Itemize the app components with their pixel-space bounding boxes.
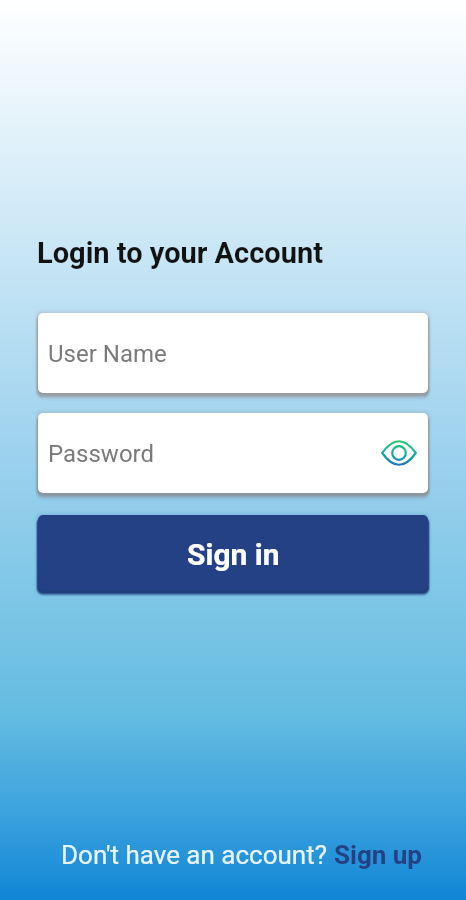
button[interactable]: User Name	[38, 313, 428, 393]
button[interactable]: Sign in	[38, 515, 428, 590]
button[interactable]: Show password	[379, 433, 419, 473]
staticText: Don't have an account?	[61, 840, 334, 870]
staticText: User Name	[48, 340, 167, 368]
staticText: Password	[48, 440, 155, 468]
staticText: Sign up	[334, 840, 422, 870]
button[interactable]: Password	[38, 413, 428, 493]
button[interactable]: Sign up	[334, 840, 422, 870]
staticText: Login to your Account	[37, 236, 323, 270]
staticText: Sign in	[187, 537, 280, 572]
